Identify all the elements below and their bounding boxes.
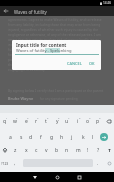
staticText: q bbox=[3, 118, 7, 125]
button[interactable]: ! bbox=[83, 144, 93, 156]
staticText: k bbox=[82, 134, 85, 141]
staticText: 14:26 bbox=[103, 1, 112, 5]
button[interactable]: w bbox=[10, 115, 20, 127]
staticText: 1 bbox=[6, 116, 8, 119]
button[interactable]: x bbox=[21, 144, 31, 156]
button[interactable]: Enter bbox=[100, 133, 108, 141]
button[interactable]: v bbox=[41, 144, 51, 156]
staticText: ! bbox=[87, 147, 89, 154]
staticText: Waves of futility bbox=[14, 9, 47, 15]
button[interactable]: p bbox=[93, 115, 103, 127]
button[interactable]: b bbox=[52, 144, 62, 156]
staticText: 2 bbox=[16, 116, 18, 119]
button[interactable]: n bbox=[62, 144, 72, 156]
button[interactable]: Back bbox=[29, 172, 41, 182]
staticText: participation. I have read this release … bbox=[8, 57, 101, 61]
other: Shift bbox=[3, 148, 7, 152]
staticText: for losses, costs and damages I incur as… bbox=[8, 52, 92, 56]
button[interactable]: t bbox=[41, 115, 51, 127]
staticText: . bbox=[97, 160, 99, 166]
staticText: ? bbox=[97, 147, 100, 154]
button[interactable]: Shift bbox=[0, 144, 10, 156]
staticText: 0 bbox=[99, 116, 101, 119]
staticText: Input title for content bbox=[16, 42, 67, 48]
button[interactable]: . bbox=[93, 157, 103, 169]
button[interactable]: ? bbox=[93, 144, 103, 156]
staticText: w bbox=[13, 118, 17, 125]
button[interactable]: o bbox=[83, 115, 93, 127]
staticText: h bbox=[60, 134, 64, 141]
staticText: d bbox=[29, 134, 33, 141]
button[interactable]: e bbox=[21, 115, 31, 127]
staticText: s bbox=[20, 134, 23, 141]
staticText: for any signature pending bbox=[40, 97, 78, 101]
button[interactable]: OK bbox=[87, 59, 97, 68]
staticText: b bbox=[55, 147, 59, 154]
staticText: t bbox=[45, 118, 47, 125]
staticText: m bbox=[76, 147, 81, 154]
staticText: x bbox=[25, 147, 28, 154]
staticText: r bbox=[35, 118, 38, 125]
button[interactable]: ?123 bbox=[0, 157, 10, 169]
staticText: j bbox=[71, 134, 73, 141]
button[interactable]: k bbox=[78, 131, 88, 143]
button[interactable]: CANCEL bbox=[65, 59, 84, 68]
button[interactable]: g bbox=[47, 131, 57, 143]
staticText: ?123 bbox=[1, 161, 9, 166]
staticText: CANCEL bbox=[67, 61, 82, 66]
staticText: y bbox=[56, 118, 59, 125]
button[interactable]: r bbox=[31, 115, 41, 127]
staticText: 4 bbox=[37, 116, 39, 119]
staticText: By signing below I certify that I am a p… bbox=[8, 88, 104, 92]
button[interactable]: c bbox=[31, 144, 41, 156]
staticText: Bruhe Wayne bbox=[8, 96, 34, 101]
button[interactable]: s bbox=[16, 131, 26, 143]
button[interactable]: Voice input bbox=[104, 144, 114, 156]
staticText: z bbox=[14, 147, 17, 154]
staticText: fully accept and assume all such risks a… bbox=[8, 47, 99, 51]
staticText: including permanent disability, paralysi… bbox=[8, 42, 97, 46]
button[interactable]: Backspace bbox=[104, 115, 114, 127]
other: Backspace bbox=[107, 120, 111, 123]
staticText: aware that this activity involves risk o… bbox=[8, 37, 100, 41]
staticText: v bbox=[45, 147, 48, 154]
button[interactable]: y bbox=[52, 115, 62, 127]
staticText: i bbox=[77, 118, 79, 125]
button[interactable]: h bbox=[57, 131, 67, 143]
staticText: n bbox=[65, 147, 69, 154]
button[interactable]: i bbox=[73, 115, 83, 127]
button[interactable]: z bbox=[10, 144, 20, 156]
button[interactable]: a bbox=[5, 131, 15, 143]
staticText: a bbox=[9, 134, 12, 141]
button[interactable]: l bbox=[88, 131, 98, 143]
staticText: 7 bbox=[68, 116, 70, 119]
staticText: o bbox=[86, 118, 90, 125]
other: Emoji bbox=[108, 162, 111, 165]
button[interactable]: m bbox=[73, 144, 83, 156]
staticText: , bbox=[14, 160, 16, 166]
button[interactable]: Emoji bbox=[104, 157, 114, 169]
button[interactable]: f bbox=[36, 131, 46, 143]
staticText: p bbox=[96, 118, 100, 125]
button[interactable]: Recent apps bbox=[73, 172, 85, 182]
staticText: f bbox=[40, 134, 42, 141]
staticText: OK bbox=[89, 61, 95, 66]
staticText: negligence or otherwise, of any of the r… bbox=[8, 32, 101, 36]
staticText: l bbox=[92, 134, 94, 141]
staticText: 9 bbox=[89, 116, 91, 119]
button[interactable]: Home bbox=[51, 172, 63, 182]
staticText: injured, regardless of whether such inju… bbox=[8, 27, 98, 31]
staticText: c bbox=[35, 147, 38, 154]
button[interactable]: d bbox=[26, 131, 36, 143]
staticText: 5 bbox=[47, 116, 49, 119]
staticText: from any liability, including those that… bbox=[8, 22, 101, 26]
button[interactable]: j bbox=[67, 131, 77, 143]
staticText: engaging in this activity. bbox=[8, 67, 46, 71]
button[interactable]: Navigate up bbox=[0, 6, 12, 16]
button[interactable]: q bbox=[0, 115, 10, 127]
button[interactable]: u bbox=[62, 115, 72, 127]
button[interactable]: , bbox=[10, 157, 20, 169]
staticText: u bbox=[65, 118, 69, 125]
staticText: g bbox=[50, 134, 54, 141]
